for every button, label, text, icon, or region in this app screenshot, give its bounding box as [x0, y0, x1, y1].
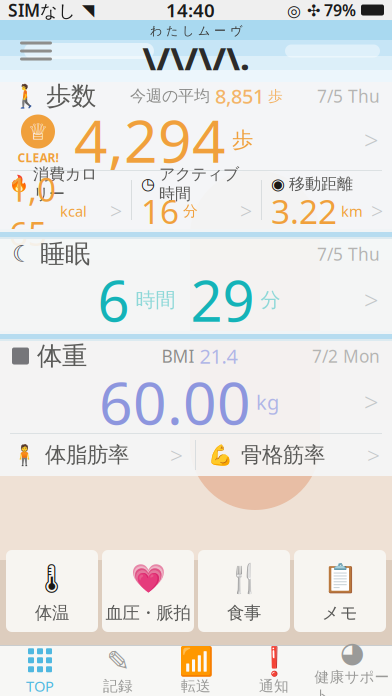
staticText: ☾ [12, 241, 32, 267]
staticText: ◕ [340, 636, 364, 668]
staticText: > [240, 197, 252, 225]
staticText: > [367, 440, 380, 470]
staticText: BMI [161, 344, 199, 367]
button[interactable]: 🚶 [0, 82, 392, 170]
staticText: 1,065 [9, 167, 56, 255]
staticText: 血圧・脈拍 [105, 602, 190, 624]
staticText: 7/5 Thu [317, 84, 380, 107]
staticText: ◷ [141, 175, 155, 193]
staticText: メモ [322, 602, 358, 624]
staticText: 転送 [181, 677, 211, 695]
staticText: 体温 [35, 602, 69, 624]
staticText: 16 [141, 189, 179, 233]
staticText: ◥ [82, 1, 94, 19]
staticText: 歩 [264, 87, 283, 105]
button[interactable]: Menu [6, 27, 66, 75]
button[interactable]: 📶 [157, 646, 235, 696]
staticText: 消費カロリー [33, 164, 97, 204]
staticText: 🍴 [226, 562, 261, 594]
staticText: 6 [97, 263, 129, 337]
staticText: 今週の平均 [130, 86, 215, 106]
staticText: 4,294 [74, 101, 226, 179]
button[interactable]: ◷ [132, 173, 261, 227]
staticText: 💗 [130, 562, 165, 594]
staticText: 体重 [37, 340, 87, 371]
staticText: CLEAR! [17, 149, 58, 165]
staticText: 21.4 [199, 343, 237, 369]
staticText: TOP [26, 676, 54, 696]
button[interactable]: 📋 [294, 550, 386, 632]
button[interactable]: ❗ [235, 646, 313, 696]
staticText: アクティブ時間 [159, 164, 239, 204]
staticText: ♕ [28, 119, 48, 144]
staticText: SIMなし [8, 0, 76, 21]
staticText: 💪 [208, 444, 233, 466]
staticText: 時間 [129, 288, 175, 312]
staticText: ◎ ✣ 79% [287, 0, 356, 21]
staticText: \/\/\/\. [142, 38, 249, 79]
staticText: 🌡 [34, 562, 70, 594]
staticText: 体脂肪率 [45, 442, 129, 468]
staticText: 睡眠 [40, 238, 90, 269]
staticText: 🚶 [12, 83, 40, 109]
staticText: 8,851 [215, 83, 264, 109]
staticText: ❗ [256, 645, 291, 677]
staticText: > [110, 197, 122, 225]
button[interactable]: 体重 [0, 341, 392, 433]
button[interactable]: TOP [1, 646, 79, 696]
button[interactable]: 🧍 [0, 434, 195, 476]
staticText: ✎ [106, 645, 129, 677]
button[interactable]: ◕ [313, 646, 391, 696]
staticText: kcal [56, 201, 87, 221]
staticText: 分 [179, 202, 198, 220]
staticText: km [337, 201, 363, 221]
button[interactable]: ☾ [0, 239, 392, 331]
staticText: 骨格筋率 [241, 442, 325, 468]
button[interactable]: ◉ [262, 173, 392, 227]
staticText: 歩数 [46, 80, 96, 111]
staticText: 14:40 [166, 0, 215, 22]
staticText: 記録 [103, 677, 133, 695]
staticText: > [364, 123, 378, 157]
staticText: 60.00 [99, 363, 251, 441]
staticText: 健康サポート [314, 668, 389, 696]
staticText: 🔥 [9, 175, 29, 193]
staticText: 7/2 Mon [312, 344, 380, 367]
button[interactable]: 🌡 [6, 550, 98, 632]
staticText: 移動距離 [289, 174, 353, 194]
button[interactable]: ✎ [79, 646, 157, 696]
staticText: 歩 [226, 127, 253, 153]
staticText: kg [251, 389, 279, 415]
staticText: 29 [175, 263, 254, 337]
staticText: > [364, 385, 378, 419]
staticText: > [170, 440, 183, 470]
staticText: 3.22 [271, 189, 337, 233]
staticText: 食事 [227, 602, 261, 624]
staticText: 📋 [322, 562, 357, 594]
staticText: > [371, 197, 383, 225]
staticText: ◉ [271, 175, 285, 193]
staticText: 通知 [259, 677, 289, 695]
staticText: > [364, 283, 378, 317]
button[interactable]: 🍴 [198, 550, 290, 632]
staticText: 📶 [178, 645, 213, 677]
button[interactable]: 💗 [102, 550, 194, 632]
button[interactable]: 🔥 [0, 173, 131, 227]
staticText: 7/5 Thu [317, 242, 380, 265]
staticText: わ た し ム ー ヴ [150, 23, 242, 38]
button[interactable]: 💪 [196, 434, 392, 476]
staticText: 分 [254, 288, 280, 312]
staticText: 🧍 [12, 444, 37, 466]
